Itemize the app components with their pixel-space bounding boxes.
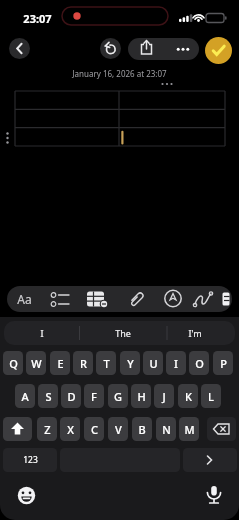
staticText: O (195, 356, 204, 371)
button[interactable] (183, 448, 237, 472)
button[interactable]: I'm (167, 321, 223, 345)
button[interactable] (166, 38, 199, 60)
button[interactable]: 123 (3, 448, 57, 472)
button[interactable]: N (156, 417, 176, 441)
button[interactable]: H (131, 384, 151, 408)
button[interactable] (160, 287, 186, 311)
button[interactable]: U (143, 351, 163, 375)
button[interactable]: W (26, 351, 46, 375)
button[interactable] (207, 417, 236, 441)
button[interactable]: K (178, 384, 198, 408)
button[interactable] (124, 287, 150, 311)
staticText: 23:07 (23, 11, 52, 25)
button[interactable]: Z (37, 417, 57, 441)
staticText: E (57, 356, 64, 371)
button[interactable] (205, 37, 232, 64)
button[interactable]: D (61, 384, 81, 408)
button[interactable]: R (73, 351, 93, 375)
button[interactable]: The (81, 321, 165, 345)
staticText: B (138, 422, 146, 437)
button[interactable]: F (84, 384, 104, 408)
staticText: G (114, 389, 122, 404)
button[interactable] (200, 478, 228, 508)
button[interactable] (3, 417, 32, 441)
staticText: N (162, 422, 171, 437)
staticText: S (45, 389, 52, 404)
staticText: I (174, 356, 178, 371)
button[interactable]: J (154, 384, 174, 408)
staticText: R (80, 356, 87, 371)
button[interactable]: C (84, 417, 104, 441)
staticText: H (137, 389, 146, 404)
staticText: Q (9, 356, 18, 371)
button[interactable]: Q (3, 351, 23, 375)
staticText: I (40, 327, 44, 339)
button[interactable]: S (38, 384, 58, 408)
staticText: M (184, 422, 195, 437)
button[interactable]: G (108, 384, 128, 408)
button[interactable]: V (108, 417, 128, 441)
button[interactable] (128, 38, 166, 60)
button[interactable]: A (15, 384, 35, 408)
staticText: Y (127, 356, 134, 371)
button[interactable]: Aa (10, 288, 38, 310)
staticText: J (162, 389, 166, 404)
button[interactable]: I (166, 351, 186, 375)
staticText: I'm (188, 327, 202, 339)
staticText: The (115, 327, 131, 339)
staticText: K (185, 389, 192, 404)
button[interactable] (100, 38, 121, 59)
staticText: U (149, 356, 158, 371)
button[interactable]: M (179, 417, 199, 441)
button[interactable]: Y (120, 351, 140, 375)
staticText: 123 (23, 454, 38, 466)
staticText: Z (44, 422, 51, 437)
button[interactable]: I (6, 321, 78, 345)
staticText: P (220, 356, 227, 371)
staticText: F (91, 389, 97, 404)
button[interactable]: E (50, 351, 70, 375)
button[interactable] (12, 481, 41, 510)
button[interactable]: T (96, 351, 116, 375)
staticText: V (115, 422, 122, 437)
button[interactable]: P (213, 351, 233, 375)
staticText: L (208, 389, 214, 404)
button[interactable] (190, 287, 216, 311)
staticText: T (103, 356, 110, 371)
button[interactable]: L (201, 384, 221, 408)
staticText: C (91, 422, 98, 437)
button[interactable]: X (60, 417, 80, 441)
button[interactable]: O (189, 351, 209, 375)
staticText: January 16, 2026 at 23:07 (72, 68, 167, 79)
button[interactable] (84, 288, 110, 310)
staticText: A (21, 389, 29, 404)
button[interactable] (9, 38, 30, 59)
staticText: D (67, 389, 76, 404)
staticText: W (31, 356, 42, 371)
button[interactable]: B (132, 417, 152, 441)
button[interactable] (46, 288, 74, 310)
staticText: Aa (17, 291, 32, 307)
staticText: X (67, 422, 74, 437)
